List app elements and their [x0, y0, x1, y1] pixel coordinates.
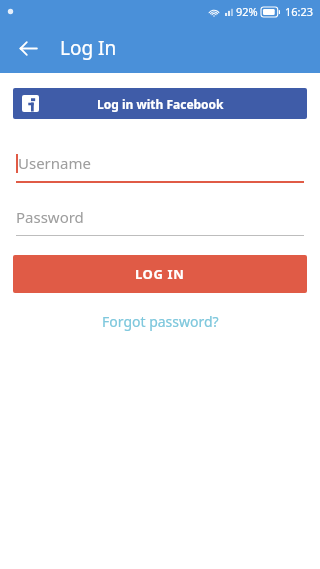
staticText: Forgot password?: [102, 312, 219, 331]
button[interactable]: Back: [8, 28, 48, 68]
button[interactable]: Log in with Facebook: [13, 88, 307, 119]
staticText: LOG IN: [135, 265, 185, 283]
button[interactable]: Username: [16, 151, 304, 175]
staticText: Log in with Facebook: [97, 96, 224, 112]
button[interactable]: Forgot password?: [92, 309, 229, 334]
staticText: Password: [16, 207, 84, 227]
button[interactable]: LOG IN: [13, 255, 307, 293]
staticText: 16:23: [285, 4, 314, 19]
button[interactable]: Password: [16, 205, 304, 229]
staticText: Username: [18, 153, 91, 173]
staticText: Log In: [60, 35, 117, 61]
staticText: 92%: [236, 4, 258, 19]
